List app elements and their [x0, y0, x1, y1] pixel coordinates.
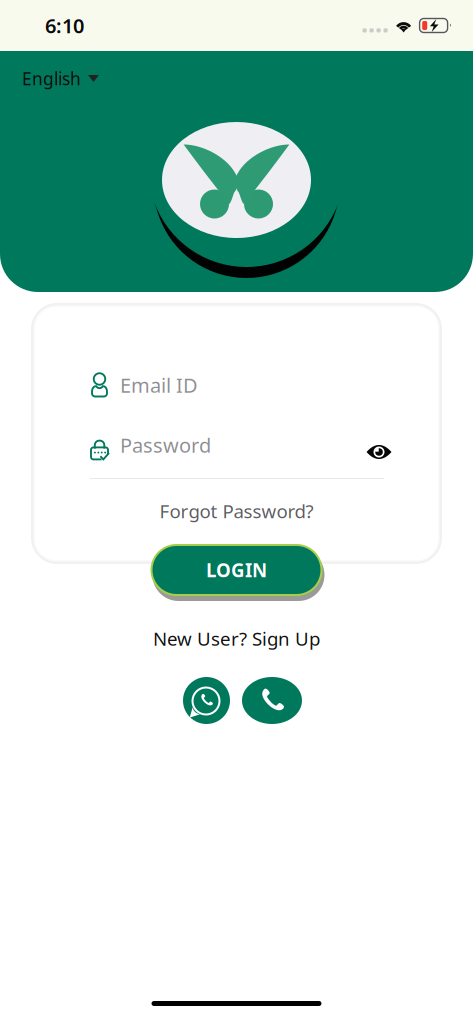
button[interactable]: Chat on WhatsApp	[183, 677, 230, 724]
button[interactable]: Call us	[242, 677, 302, 724]
staticText: 6:10	[45, 12, 84, 39]
staticText: English	[22, 67, 81, 90]
button[interactable]: Email ID	[90, 368, 390, 402]
staticText: Forgot Password?	[159, 499, 313, 523]
staticText: Email ID	[120, 372, 198, 398]
staticText: Password	[120, 432, 211, 458]
button[interactable]: Password	[90, 428, 390, 462]
button[interactable]: Forgot Password?	[35, 494, 438, 528]
button[interactable]: LOGIN	[144, 538, 328, 602]
staticText: New User? Sign Up	[153, 626, 320, 651]
button[interactable]: Show password	[362, 437, 396, 467]
staticText: LOGIN	[206, 558, 267, 582]
button[interactable]: New User? Sign Up	[143, 622, 330, 655]
button[interactable]: English	[0, 51, 109, 96]
